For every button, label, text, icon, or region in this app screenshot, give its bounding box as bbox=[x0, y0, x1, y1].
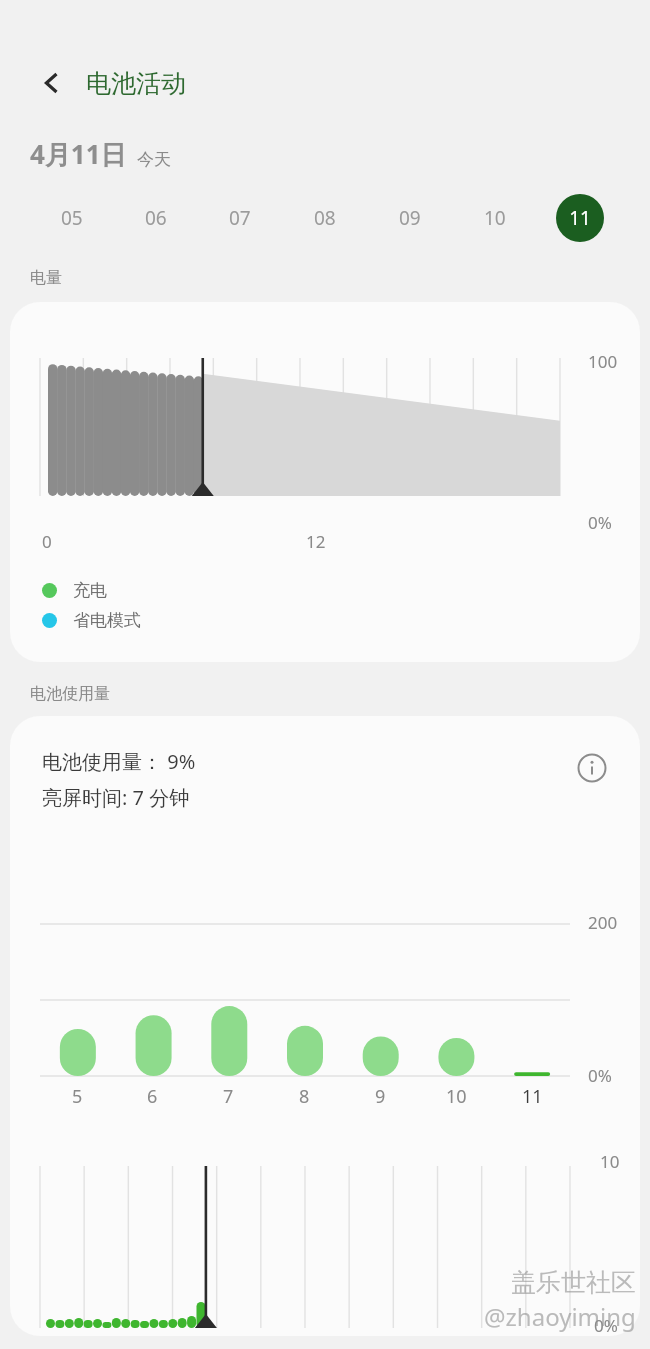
button[interactable]: 05 bbox=[30, 190, 114, 246]
button[interactable]: 10 bbox=[452, 190, 537, 246]
staticText: 05 bbox=[61, 205, 83, 231]
staticText: 08 bbox=[314, 205, 336, 231]
staticText: 10 bbox=[446, 1084, 467, 1109]
staticText: 100 bbox=[588, 350, 618, 373]
staticText: 12 bbox=[306, 530, 326, 553]
button[interactable]: Information bbox=[572, 748, 612, 788]
staticText: 0% bbox=[594, 1314, 618, 1336]
staticText: 电池使用量： 9% bbox=[42, 748, 196, 775]
button[interactable]: 09 bbox=[367, 190, 452, 246]
staticText: 0 bbox=[42, 530, 52, 553]
button[interactable]: Back bbox=[30, 61, 74, 105]
staticText: 盖乐世社区 bbox=[511, 1267, 636, 1298]
button[interactable]: 06 bbox=[114, 190, 198, 246]
staticText: 8 bbox=[299, 1084, 310, 1109]
staticText: 电池使用量 bbox=[30, 684, 110, 704]
staticText: 6 bbox=[147, 1084, 158, 1109]
staticText: 10 bbox=[484, 205, 506, 231]
staticText: 200 bbox=[588, 911, 618, 934]
staticText: 充电 bbox=[73, 580, 107, 601]
button[interactable]: 11 bbox=[537, 190, 622, 246]
staticText: @zhaoyiming bbox=[484, 1300, 636, 1333]
staticText: 11 bbox=[569, 205, 591, 231]
staticText: 7 bbox=[223, 1084, 234, 1109]
staticText: 5 bbox=[72, 1084, 83, 1109]
staticText: 06 bbox=[145, 205, 167, 231]
staticText: 电池活动 bbox=[86, 68, 186, 99]
staticText: 电量 bbox=[30, 268, 62, 288]
staticText: 亮屏时间: 7 分钟 bbox=[42, 784, 190, 811]
staticText: 10 bbox=[600, 1150, 620, 1173]
button[interactable]: 08 bbox=[282, 190, 367, 246]
button[interactable]: 07 bbox=[198, 190, 282, 246]
staticText: 11 bbox=[522, 1084, 543, 1109]
staticText: 4月11日 bbox=[30, 136, 127, 172]
staticText: 今天 bbox=[137, 149, 171, 170]
staticText: 0% bbox=[588, 1064, 612, 1087]
staticText: 9 bbox=[375, 1084, 386, 1109]
staticText: 09 bbox=[399, 205, 421, 231]
staticText: 省电模式 bbox=[73, 610, 141, 631]
button[interactable]: 电池使用量： 9% bbox=[10, 716, 640, 1336]
staticText: 07 bbox=[229, 205, 251, 231]
staticText: 0% bbox=[588, 511, 612, 534]
button[interactable]: 100 bbox=[10, 302, 640, 662]
